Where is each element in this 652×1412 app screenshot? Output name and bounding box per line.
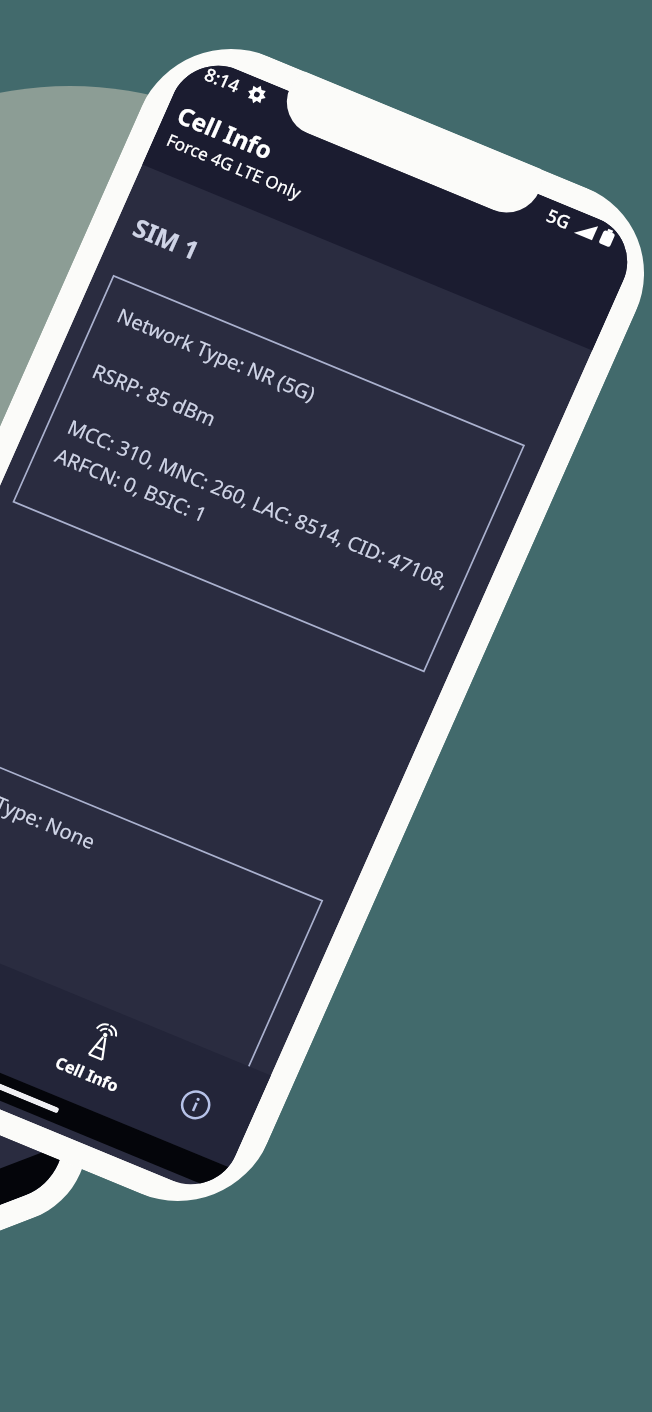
staticText: 8:14 (194, 52, 250, 108)
button[interactable]: Network Type: None (0, 613, 386, 1245)
button[interactable]: Network Type: NR (5G) (0, 158, 588, 790)
staticText: MCC: 310, MNC: 260, LAC: 8514, CID: 4710… (37, 304, 470, 732)
button[interactable]: Cell Info (35, 993, 158, 1115)
staticText: RSRP: 85 dBm (81, 323, 227, 467)
button[interactable]: Info (160, 1070, 231, 1140)
staticText: Network Type: NR (5G) (106, 245, 327, 464)
staticText: 5G (536, 197, 581, 242)
staticText: Cell Info (46, 1033, 128, 1115)
staticText: Force 4G LTE Only (157, 90, 311, 243)
staticText: Network Type: None (0, 706, 107, 906)
staticText: Cell Info (164, 71, 287, 193)
staticText: SIM 1 (119, 192, 213, 285)
